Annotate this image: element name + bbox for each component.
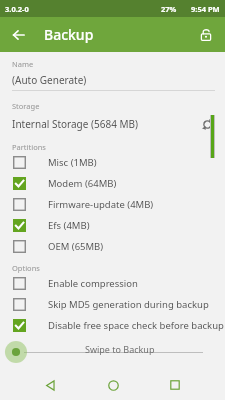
button[interactable]: Refresh [197, 114, 217, 134]
staticText: Storage [12, 101, 40, 111]
button[interactable]: Swipe to Backup [4, 340, 28, 364]
staticText: OEM (65MB) [48, 240, 104, 253]
button[interactable]: Misc (1MB) [0, 152, 225, 173]
button[interactable]: Modem (64MB) [0, 173, 225, 194]
button[interactable]: Recents [162, 372, 188, 398]
staticText: 27% [161, 4, 177, 14]
staticText: Partitions [12, 142, 46, 152]
staticText: Modem (64MB) [48, 177, 117, 190]
button[interactable]: (Auto Generate) [12, 73, 215, 91]
button[interactable]: Enable compression [0, 273, 225, 294]
button[interactable]: Back [7, 23, 31, 47]
staticText: Internal Storage (5684 MB) [12, 117, 197, 131]
button[interactable]: Back [37, 372, 63, 398]
button[interactable]: OEM (65MB) [0, 236, 225, 257]
staticText: Swipe to Backup [85, 343, 155, 355]
button[interactable]: Skip MD5 generation during backup [0, 294, 225, 315]
staticText: Disable free space check before backup [48, 319, 224, 332]
button[interactable]: Lock [194, 23, 218, 47]
staticText: Backup [44, 25, 94, 44]
staticText: Efs (4MB) [48, 219, 90, 232]
staticText: Firmware-update (4MB) [48, 198, 154, 211]
staticText: Enable compression [48, 277, 138, 290]
staticText: (Auto Generate) [12, 73, 87, 87]
button[interactable]: Home [100, 372, 126, 398]
button[interactable]: Disable free space check before backup [0, 315, 225, 336]
button[interactable]: Efs (4MB) [0, 215, 225, 236]
staticText: Name [12, 59, 34, 69]
staticText: Misc (1MB) [48, 156, 97, 169]
button[interactable]: Firmware-update (4MB) [0, 194, 225, 215]
staticText: 9:54 PM [191, 4, 220, 14]
staticText: Options [12, 263, 40, 273]
button[interactable]: Internal Storage (5684 MB) [0, 114, 225, 134]
staticText: 3.0.2-0 [5, 4, 29, 14]
staticText: Skip MD5 generation during backup [48, 298, 209, 311]
